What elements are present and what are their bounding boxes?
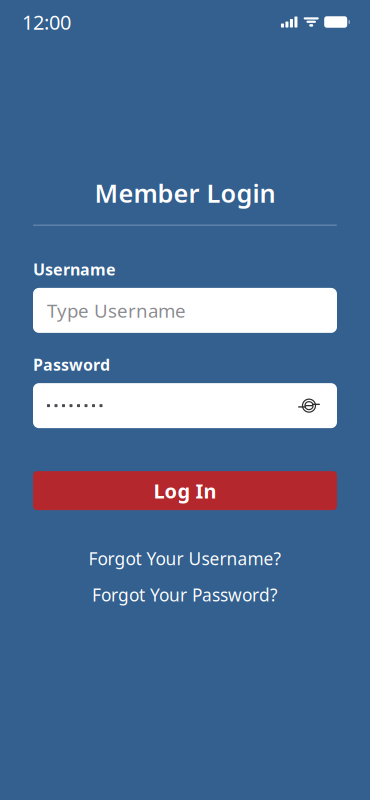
button[interactable]: Log In	[33, 471, 337, 510]
button[interactable]: Password field	[33, 383, 289, 428]
staticText: Member Login	[94, 176, 275, 210]
button[interactable]: Type Username	[33, 288, 337, 333]
button[interactable]: Forgot Your Username?	[80, 544, 289, 573]
staticText: 12:00	[22, 9, 71, 35]
button[interactable]: Forgot Your Password?	[84, 580, 286, 609]
staticText: Password	[33, 354, 110, 375]
button[interactable]: Show password	[289, 383, 337, 428]
staticText: Forgot Your Username?	[88, 547, 281, 570]
staticText: Log In	[153, 477, 216, 504]
staticText: Forgot Your Password?	[92, 583, 278, 606]
staticText: Username	[33, 259, 116, 280]
staticText: Type Username	[47, 298, 186, 323]
